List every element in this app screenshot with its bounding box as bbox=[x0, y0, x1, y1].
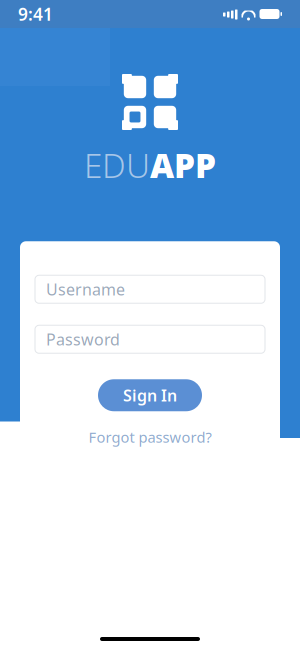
staticText: Sign In bbox=[123, 385, 177, 406]
staticText: EDU bbox=[84, 143, 150, 187]
staticText: Username bbox=[46, 279, 125, 300]
staticText: APP bbox=[150, 143, 216, 187]
button[interactable]: Sign In bbox=[98, 379, 202, 411]
staticText: Password bbox=[46, 329, 120, 350]
staticText: Forgot password? bbox=[88, 427, 211, 447]
staticText: 9:41 bbox=[18, 2, 53, 25]
button[interactable]: Forgot password? bbox=[80, 424, 219, 450]
